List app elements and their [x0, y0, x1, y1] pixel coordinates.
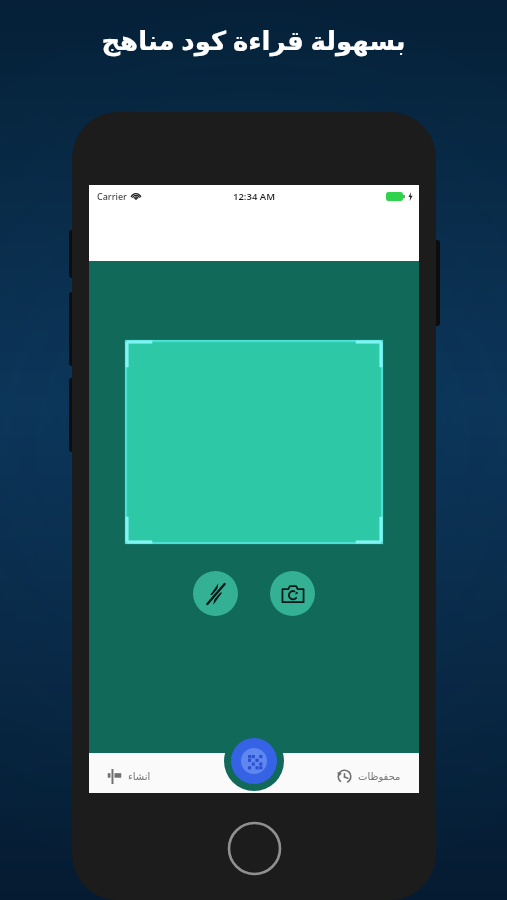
- staticText: محفوظات: [358, 771, 401, 783]
- button[interactable]: انشاء: [101, 765, 157, 788]
- staticText: انشاء: [128, 771, 151, 783]
- button[interactable]: محفوظات: [331, 765, 407, 788]
- staticText: 12:34 AM: [233, 190, 276, 203]
- staticText: Carrier: [97, 190, 127, 202]
- staticText: بسهولة قراءة كود مناهج: [101, 22, 406, 57]
- button[interactable]: Toggle flash: [193, 571, 238, 616]
- button[interactable]: Scan code: [231, 738, 277, 784]
- button[interactable]: Switch camera: [270, 571, 315, 616]
